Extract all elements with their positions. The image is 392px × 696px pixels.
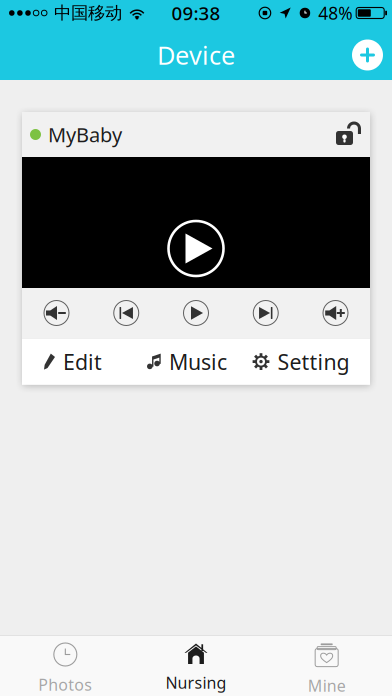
button[interactable]: Play	[177, 294, 214, 331]
staticText: Device	[157, 38, 235, 72]
button[interactable]: Music	[130, 339, 244, 385]
button[interactable]: Edit	[16, 339, 130, 385]
staticText: Mine	[308, 675, 346, 696]
button[interactable]: Nursing	[131, 636, 261, 696]
staticText: MyBaby	[48, 121, 122, 148]
staticText: Music	[169, 347, 227, 376]
staticText: 09:38	[171, 1, 220, 25]
button[interactable]: Add device	[338, 26, 392, 79]
staticText: 48%	[318, 1, 352, 24]
button[interactable]: Setting	[244, 339, 358, 385]
button[interactable]: Mine	[261, 636, 392, 696]
staticText: 中国移动	[54, 2, 122, 24]
button[interactable]: Next	[247, 294, 284, 331]
staticText: Nursing	[165, 672, 226, 693]
button[interactable]: Photos	[0, 636, 131, 696]
button[interactable]: Previous	[108, 294, 145, 331]
staticText: Setting	[277, 347, 349, 376]
staticText: Photos	[38, 674, 92, 695]
button[interactable]: Unlock device	[336, 123, 361, 146]
button[interactable]: Play live video	[168, 221, 223, 276]
button[interactable]: Volume up	[317, 294, 354, 331]
button[interactable]: Volume down	[38, 294, 75, 331]
staticText: Edit	[63, 347, 102, 376]
